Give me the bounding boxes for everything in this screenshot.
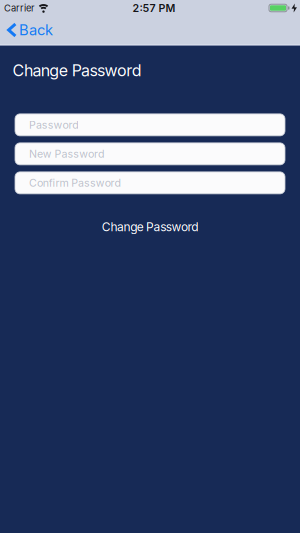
staticText: Carrier (4, 2, 35, 13)
staticText: Back (19, 21, 53, 39)
staticText: Change Password (102, 220, 198, 234)
staticText: 2:57 PM (132, 2, 175, 14)
button[interactable]: Change Password (92, 212, 208, 242)
button[interactable]: New Password (15, 143, 285, 165)
staticText: New Password (29, 148, 105, 160)
staticText: Password (29, 119, 79, 131)
button[interactable]: Confirm Password (15, 172, 285, 194)
staticText: Change Password (12, 61, 142, 80)
button[interactable]: Password (15, 114, 285, 136)
staticText: Confirm Password (29, 177, 121, 189)
button[interactable]: Back (0, 14, 53, 46)
